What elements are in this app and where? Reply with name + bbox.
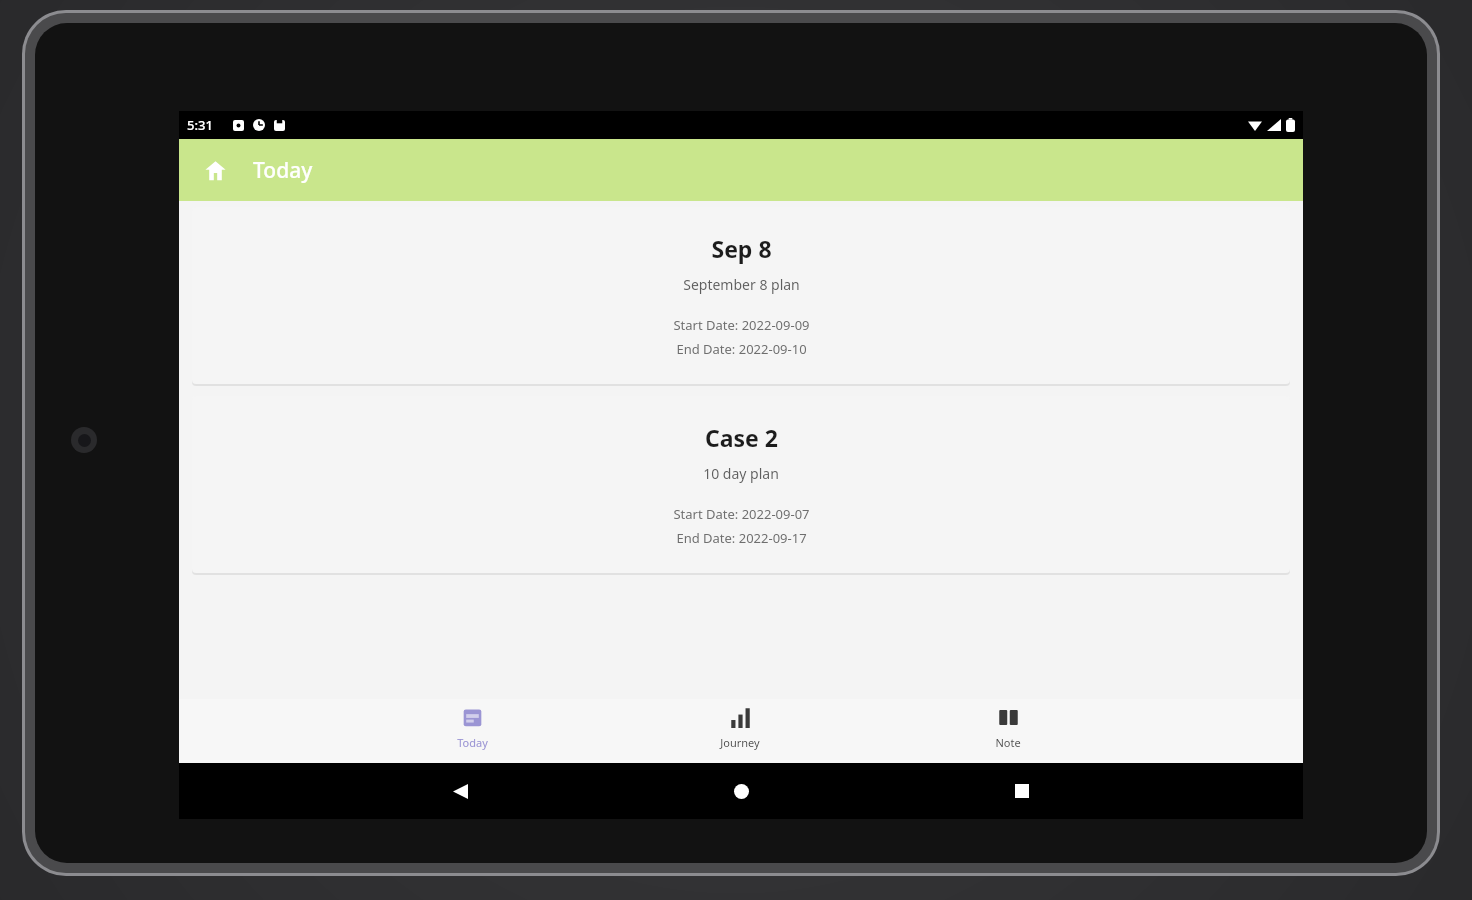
button[interactable]: Note bbox=[874, 699, 1142, 763]
staticText: Start Date: 2022-09-07 bbox=[673, 505, 810, 523]
button[interactable]: Today bbox=[339, 699, 606, 763]
staticText: End Date: 2022-09-10 bbox=[676, 340, 807, 358]
staticText: Note bbox=[995, 735, 1021, 750]
staticText: Journey bbox=[720, 735, 760, 750]
staticText: 10 day plan bbox=[703, 464, 779, 483]
button[interactable]: Recent apps bbox=[998, 767, 1046, 815]
button[interactable]: Home bbox=[717, 767, 765, 815]
staticText: Start Date: 2022-09-09 bbox=[673, 316, 810, 334]
button[interactable]: Home bbox=[193, 148, 237, 192]
button[interactable]: Case 2 bbox=[192, 396, 1290, 573]
staticText: Case 2 bbox=[705, 422, 778, 453]
staticText: Today bbox=[253, 156, 313, 185]
button[interactable]: Sep 8 bbox=[192, 207, 1290, 384]
staticText: September 8 plan bbox=[683, 275, 800, 294]
button[interactable]: Back bbox=[436, 767, 484, 815]
staticText: Sep 8 bbox=[711, 233, 772, 264]
staticText: End Date: 2022-09-17 bbox=[676, 529, 807, 547]
staticText: Today bbox=[457, 735, 488, 750]
button[interactable]: Journey bbox=[606, 699, 874, 763]
staticText: 5:31 bbox=[187, 116, 213, 134]
